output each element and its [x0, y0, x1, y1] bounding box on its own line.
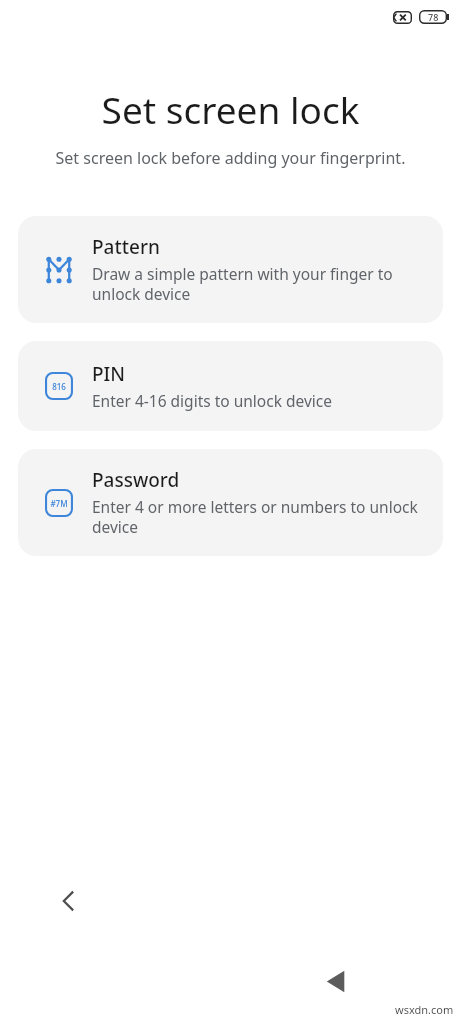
button[interactable]: Back: [45, 877, 93, 925]
staticText: Set screen lock: [0, 84, 461, 134]
staticText: Pattern: [92, 234, 160, 260]
button[interactable]: #7M: [18, 449, 443, 556]
staticText: #7M: [50, 498, 68, 509]
staticText: Set screen lock before adding your finge…: [20, 147, 441, 169]
staticText: PIN: [92, 361, 126, 387]
staticText: Enter 4-16 digits to unlock device: [92, 390, 333, 411]
staticText: wsxdn.com: [395, 1002, 454, 1017]
button[interactable]: Pattern: [18, 216, 443, 323]
staticText: Enter 4 or more letters or numbers to un…: [92, 496, 427, 538]
button[interactable]: Navigate back: [313, 958, 359, 1004]
staticText: 78: [428, 11, 439, 23]
staticText: Password: [92, 467, 180, 493]
button[interactable]: 816: [18, 341, 443, 431]
staticText: 816: [52, 381, 66, 392]
staticText: Draw a simple pattern with your finger t…: [92, 263, 427, 305]
